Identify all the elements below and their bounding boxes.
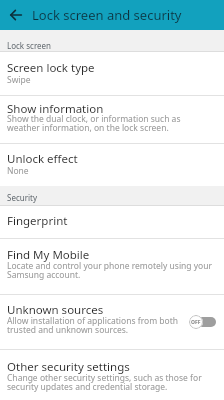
- staticText: Lock screen: [7, 40, 52, 51]
- staticText: Find My Mobile: [7, 247, 90, 263]
- button[interactable]: [0, 1, 28, 29]
- staticText: Fingerprint: [7, 213, 68, 229]
- button[interactable]: Screen lock type: [0, 52, 224, 95]
- button[interactable]: Unknown sources: [0, 295, 224, 349]
- staticText: Unknown sources: [7, 302, 104, 318]
- staticText: Other security settings: [7, 359, 130, 375]
- button[interactable]: Find My Mobile: [0, 239, 224, 294]
- staticText: OFF: [191, 319, 201, 326]
- staticText: Unlock effect: [7, 151, 78, 167]
- staticText: Show information: [7, 101, 104, 117]
- button[interactable]: Unlock effect: [0, 144, 224, 186]
- button[interactable]: Show information: [0, 96, 224, 143]
- staticText: Swipe: [7, 74, 31, 86]
- staticText: Show the dual clock, or information such…: [7, 113, 181, 134]
- button[interactable]: Fingerprint: [0, 206, 224, 238]
- staticText: Security: [7, 192, 38, 203]
- staticText: None: [7, 165, 29, 177]
- button[interactable]: Other security settings: [0, 350, 224, 400]
- staticText: Change other security settings, such as …: [7, 372, 202, 393]
- staticText: Screen lock type: [7, 60, 95, 76]
- staticText: Allow installation of applications from …: [7, 315, 178, 336]
- staticText: Lock screen and security: [32, 6, 182, 24]
- staticText: Locate and control your phone remotely u…: [7, 260, 213, 281]
